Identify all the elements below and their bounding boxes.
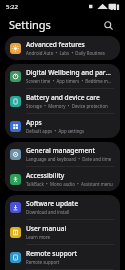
staticText: Apps [26, 118, 42, 127]
staticText: Digital Wellbeing and parental controls [26, 68, 114, 77]
staticText: Remote support [26, 249, 78, 258]
button[interactable]: Accessibility [5, 167, 120, 191]
button[interactable]: Battery and device care [5, 89, 120, 113]
staticText: Software update [26, 199, 79, 208]
staticText: Settings [9, 17, 51, 32]
staticText: Default apps • App settings [26, 128, 85, 134]
button[interactable]: Software update [5, 195, 120, 219]
staticText: Battery and device care [26, 93, 100, 102]
staticText: 5:22 [6, 3, 18, 11]
staticText: Screen time • App timers • Bedtime mode [26, 78, 114, 84]
button[interactable]: Remote support [5, 245, 120, 269]
staticText: Download and install [26, 209, 70, 215]
staticText: Accessibility [26, 171, 65, 180]
staticText: Language and keyboard • Date and time [26, 156, 112, 162]
button[interactable]: General management [5, 142, 120, 166]
staticText: Learn more [26, 234, 50, 240]
button[interactable]: Apps [5, 114, 120, 138]
staticText: Android Auto • Labs • Daily Routines [26, 50, 105, 56]
staticText: TalkBack • Mono audio • Assistant menu [26, 181, 113, 187]
staticText: General management [26, 146, 95, 155]
button[interactable]: Advanced features [5, 36, 120, 60]
staticText: Storage • Memory • Device protection [26, 103, 108, 109]
button[interactable]: Search [100, 17, 116, 33]
button[interactable]: Digital Wellbeing and parental controls [5, 64, 120, 88]
staticText: Advanced features [26, 40, 85, 49]
staticText: Remote support [26, 259, 60, 265]
button[interactable]: User manual [5, 220, 120, 244]
staticText: User manual [26, 224, 67, 233]
